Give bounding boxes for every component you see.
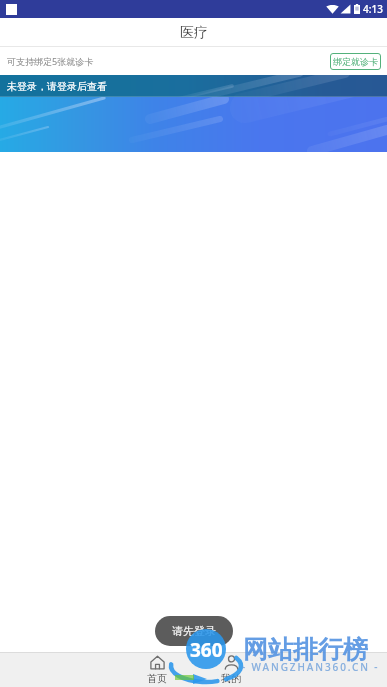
staticText: 可支持绑定5张就诊卡: [7, 55, 94, 67]
staticText: 网站排行榜: [243, 634, 368, 665]
staticText: 请先登录: [172, 624, 216, 638]
button[interactable]: 绑定就诊卡: [330, 53, 381, 70]
staticText: 医疗: [180, 24, 208, 42]
staticText: 绑定就诊卡: [333, 56, 378, 67]
button[interactable]: 未登录，请登录后查看: [0, 75, 387, 152]
staticText: 首页: [147, 672, 167, 685]
staticText: 4:13: [363, 2, 383, 16]
staticText: 未登录，请登录后查看: [7, 80, 107, 93]
button[interactable]: 首页: [141, 653, 173, 687]
staticText: 360: [190, 637, 223, 663]
button[interactable]: 我的: [215, 653, 247, 687]
staticText: - WANGZHAN360.CN -: [242, 660, 380, 674]
staticText: 我的: [221, 672, 241, 685]
